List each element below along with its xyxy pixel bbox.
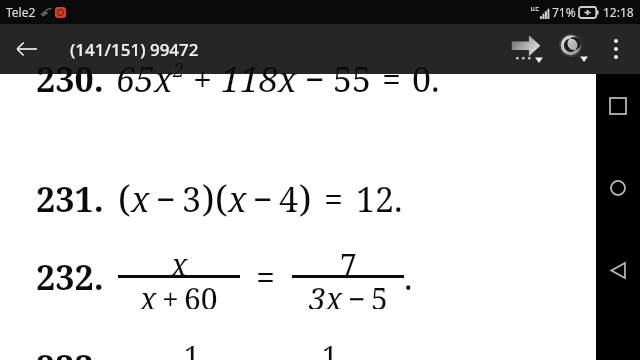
staticText: = xyxy=(382,56,402,102)
staticText: ( xyxy=(118,174,131,223)
staticText: 1 xyxy=(184,336,200,360)
staticText: ) xyxy=(202,174,215,223)
staticText: 12. xyxy=(356,176,403,222)
staticText: 233. xyxy=(36,344,104,360)
staticText: ) xyxy=(299,174,312,223)
button[interactable]: Recent apps xyxy=(596,84,640,128)
staticText: x xyxy=(131,176,150,222)
staticText: 3x xyxy=(309,278,343,309)
staticText: 60 xyxy=(184,278,218,309)
staticText: 0. xyxy=(412,56,440,102)
staticText: (141/151) 99472 xyxy=(70,38,199,61)
staticText: 5 xyxy=(371,278,388,309)
staticText: . xyxy=(404,254,413,300)
staticText: ( xyxy=(215,174,228,223)
staticText: x xyxy=(171,244,188,275)
button[interactable]: Home xyxy=(596,166,640,210)
staticText: x xyxy=(140,278,157,309)
staticText: 232. xyxy=(36,254,104,300)
staticText: 7 xyxy=(340,244,357,275)
staticText: 4 xyxy=(279,176,299,222)
button[interactable]: Back xyxy=(596,248,640,292)
staticText: Tele2 xyxy=(6,4,36,20)
staticText: 230. xyxy=(36,56,104,102)
staticText: = xyxy=(324,176,344,222)
staticText: 65x xyxy=(116,56,173,102)
staticText: − xyxy=(253,176,273,222)
staticText: x xyxy=(228,176,247,222)
staticText: + xyxy=(162,278,179,309)
staticText: + xyxy=(193,56,213,102)
button[interactable]: Night mode xyxy=(550,26,596,72)
staticText: = xyxy=(256,254,276,300)
staticText: − xyxy=(348,278,366,309)
staticText: − xyxy=(305,56,325,102)
staticText: 118x xyxy=(221,56,297,102)
staticText: 231. xyxy=(36,176,104,222)
staticText: 1 xyxy=(322,336,338,360)
button[interactable]: Back xyxy=(8,30,46,68)
staticText: 12:18 xyxy=(603,4,634,20)
staticText: 2 xyxy=(173,56,185,83)
staticText: − xyxy=(156,176,176,222)
button[interactable]: Go to page xyxy=(504,26,550,72)
staticText: 71% xyxy=(552,4,576,20)
staticText: 55 xyxy=(333,56,372,102)
button[interactable]: More options xyxy=(596,29,636,69)
staticText: 3 xyxy=(182,176,202,222)
